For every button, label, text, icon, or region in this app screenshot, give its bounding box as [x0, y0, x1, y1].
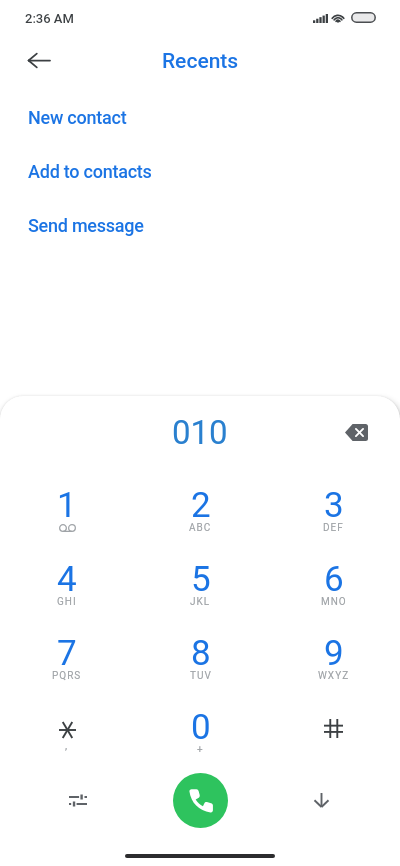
staticText: 2 [191, 485, 211, 526]
button[interactable]: 9 [267, 631, 400, 705]
button[interactable]: Call [173, 773, 228, 828]
button[interactable]: Dialpad settings [55, 777, 101, 823]
staticText: Recents [162, 49, 239, 74]
staticText: PQRS [52, 670, 82, 682]
button[interactable]: Add to contacts [0, 149, 400, 193]
button[interactable]: Send message [0, 203, 400, 247]
staticText: 9 [324, 633, 344, 674]
button[interactable]: 6 [267, 557, 400, 631]
staticText: 2:36 AM [25, 11, 74, 26]
button[interactable]: 8 [134, 631, 267, 705]
button[interactable]: New contact [0, 95, 400, 139]
staticText: 5 [191, 559, 211, 600]
staticText: 7 [57, 633, 77, 674]
staticText: ABC [189, 522, 212, 534]
staticText: 8 [191, 633, 211, 674]
button[interactable]: 5 [134, 557, 267, 631]
staticText: 6 [324, 559, 344, 600]
staticText: 0 [191, 707, 211, 748]
staticText: JKL [190, 596, 211, 608]
staticText: New contact [28, 107, 127, 128]
button[interactable]: 1 [0, 483, 134, 557]
button[interactable]: 4 [0, 557, 134, 631]
button[interactable]: 7 [0, 631, 134, 705]
staticText: 3 [324, 485, 344, 526]
button[interactable]: Hide dialpad [298, 777, 344, 823]
staticText: 1 [57, 485, 77, 526]
staticText: , [65, 739, 69, 752]
button[interactable]: 0 [134, 705, 267, 779]
button[interactable]: Backspace [334, 410, 378, 454]
staticText: WXYZ [318, 670, 350, 682]
staticText: 4 [57, 559, 77, 600]
button[interactable]: Back [15, 36, 63, 84]
button[interactable]: 2 [134, 483, 267, 557]
staticText: 010 [172, 413, 228, 452]
button[interactable]: , [0, 705, 134, 779]
button[interactable]: 3 [267, 483, 400, 557]
staticText: MNO [321, 596, 347, 608]
staticText: DEF [323, 522, 344, 534]
staticText: + [197, 744, 204, 756]
staticText: Add to contacts [28, 161, 152, 182]
staticText: Send message [28, 215, 144, 236]
staticText: GHI [57, 596, 77, 608]
staticText: TUV [190, 670, 212, 682]
button[interactable] [267, 705, 400, 779]
